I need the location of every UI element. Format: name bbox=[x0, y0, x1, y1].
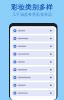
button[interactable]: List item bbox=[12, 90, 55, 96]
button[interactable]: List item bbox=[12, 51, 55, 57]
staticText: 几乎涵盖各类彩妆单品 bbox=[12, 12, 52, 17]
button[interactable]: List item bbox=[12, 28, 55, 34]
staticText: 彩妆类别多样 bbox=[11, 3, 53, 11]
button[interactable]: List item bbox=[12, 82, 55, 88]
button[interactable]: List item bbox=[12, 35, 55, 42]
button[interactable]: List item bbox=[12, 74, 55, 81]
button[interactable]: List item bbox=[12, 67, 55, 73]
button[interactable]: List item bbox=[12, 59, 55, 65]
button[interactable]: List item bbox=[12, 43, 55, 49]
